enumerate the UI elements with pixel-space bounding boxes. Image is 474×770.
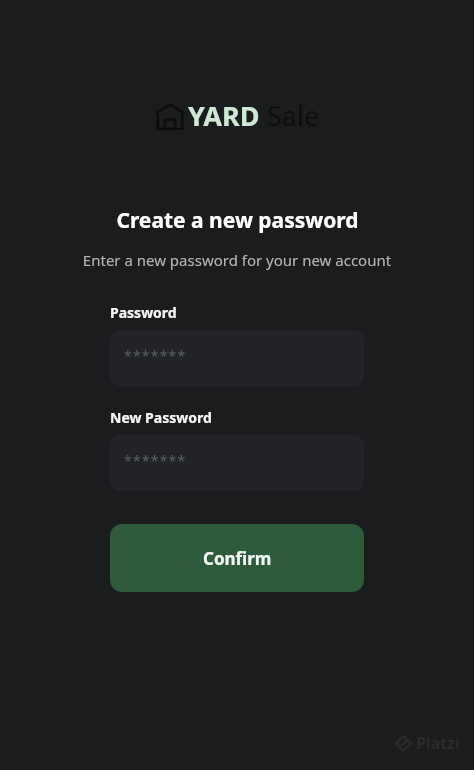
staticText: New Password <box>110 408 212 427</box>
staticText: Enter a new password for your new accoun… <box>72 250 402 270</box>
staticText: Platzi <box>416 732 460 754</box>
button[interactable]: Yard Sale logo <box>154 97 320 134</box>
staticText: Password <box>110 303 177 322</box>
staticText: ******* <box>124 451 187 470</box>
staticText: ******* <box>124 346 187 365</box>
button[interactable]: ******* <box>110 330 364 386</box>
other: Yard Sale logo <box>154 100 186 132</box>
staticText: Create a new password <box>116 206 359 235</box>
staticText: Sale <box>260 97 320 134</box>
staticText: YARD <box>188 97 260 134</box>
button[interactable]: Confirm <box>110 524 364 592</box>
staticText: Confirm <box>203 547 272 570</box>
button[interactable]: ******* <box>110 435 364 491</box>
